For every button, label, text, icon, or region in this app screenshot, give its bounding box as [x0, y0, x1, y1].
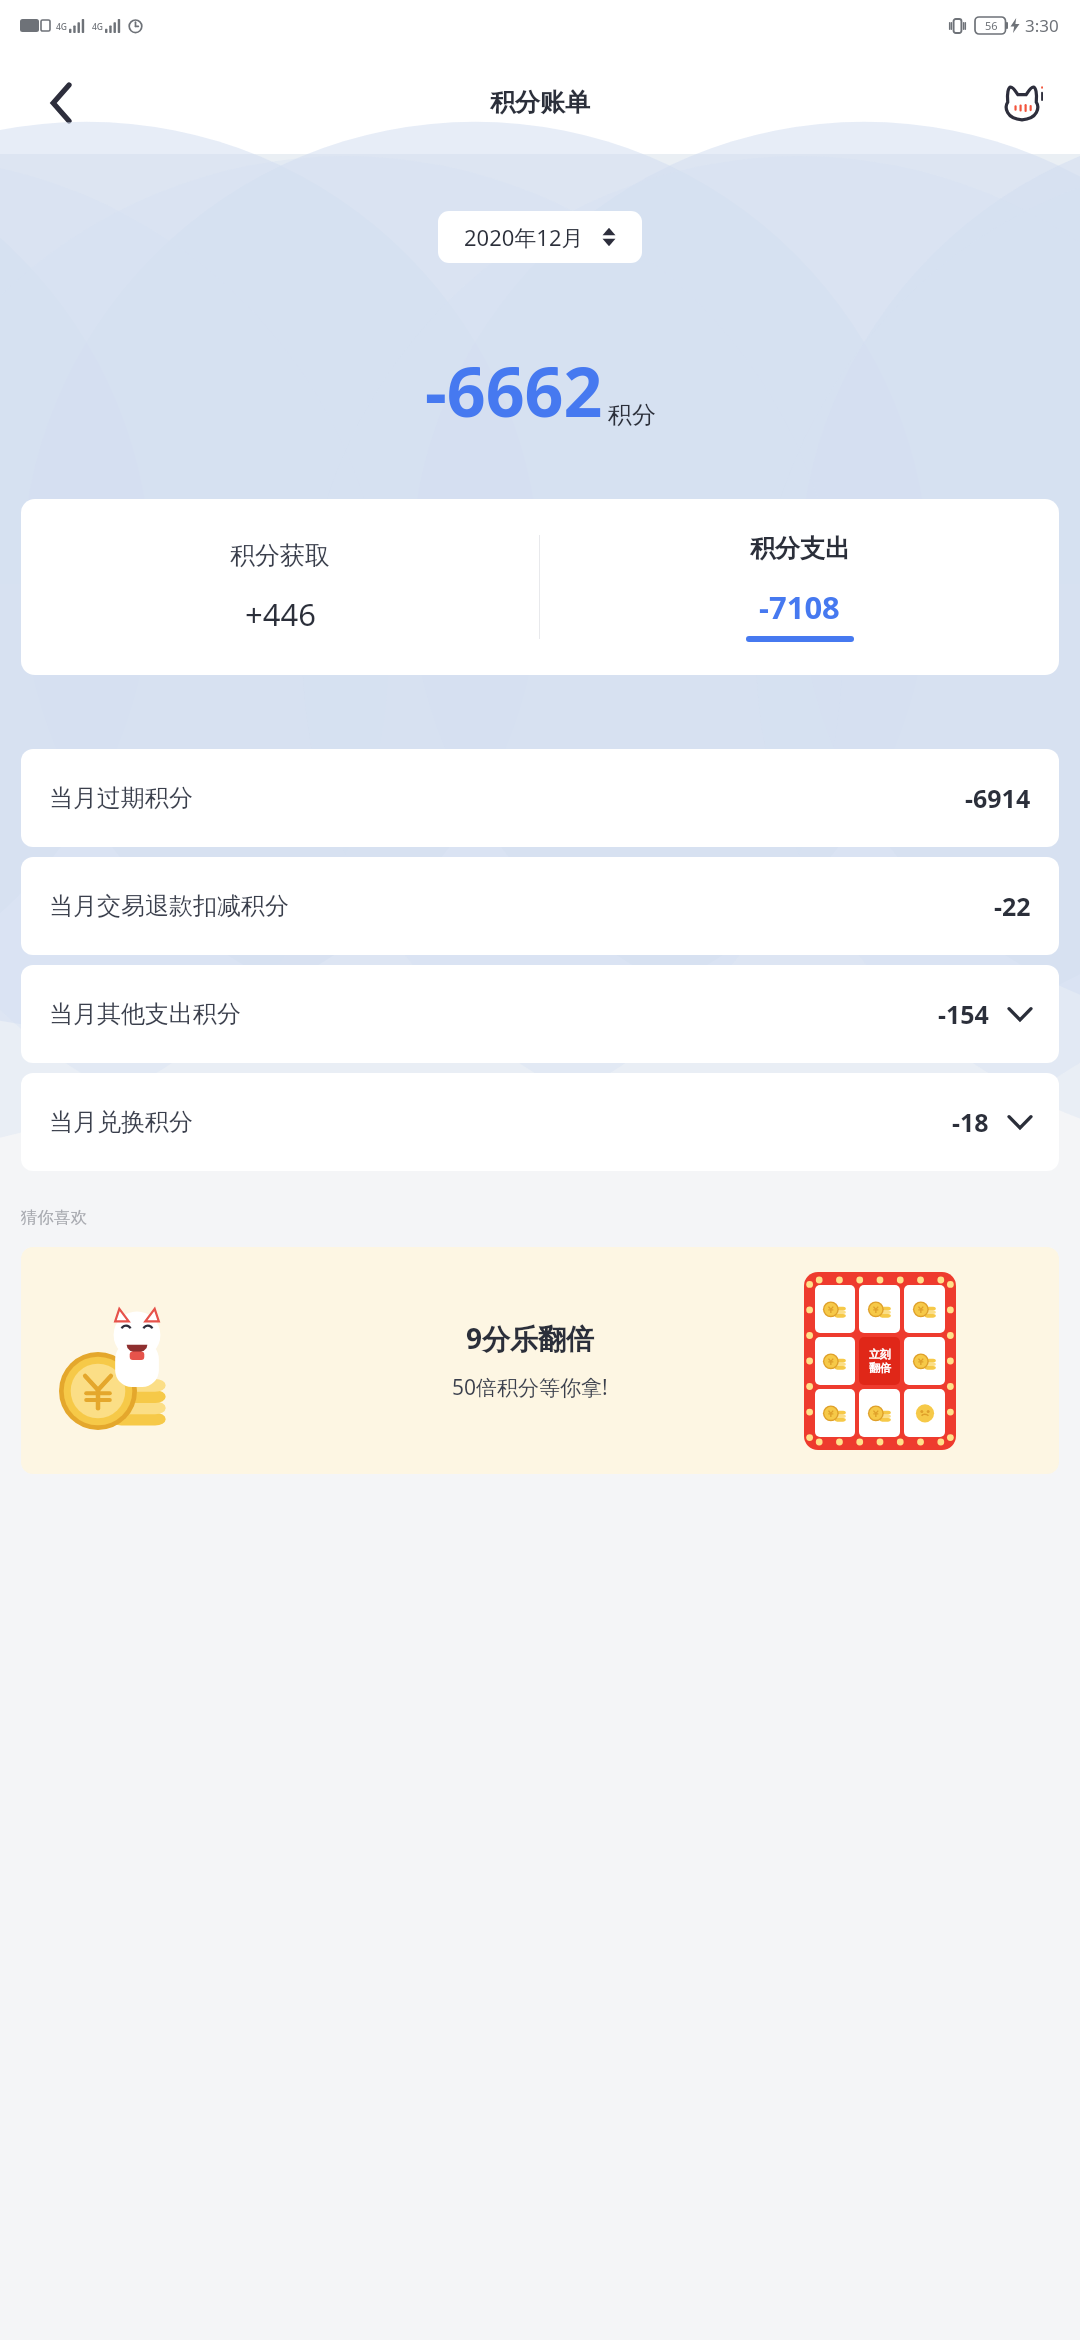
staticText: 积分账单: [490, 87, 590, 118]
button[interactable]: 返回: [38, 79, 86, 127]
staticText: -154: [938, 997, 989, 1031]
staticText: 积分: [608, 400, 656, 430]
button[interactable]: 当月其他支出积分: [21, 965, 1059, 1063]
button[interactable]: 当月交易退款扣减积分: [21, 857, 1059, 955]
button[interactable]: 9分乐翻倍: [21, 1247, 1059, 1474]
staticText: -6662: [425, 344, 603, 437]
staticText: 立刻: [869, 1347, 891, 1361]
staticText: -7108: [759, 586, 840, 628]
staticText: 9分乐翻倍: [466, 1319, 595, 1357]
staticText: 猜你喜欢: [21, 1207, 87, 1228]
staticText: 当月其他支出积分: [49, 999, 241, 1029]
staticText: -18: [952, 1105, 989, 1139]
staticText: 积分获取: [230, 540, 330, 571]
staticText: 3:30: [1025, 14, 1059, 37]
button[interactable]: 当月兑换积分: [21, 1073, 1059, 1171]
staticText: -22: [994, 889, 1031, 923]
staticText: 当月过期积分: [49, 783, 193, 813]
staticText: 4G: [56, 21, 68, 33]
staticText: +446: [245, 593, 316, 635]
staticText: 当月交易退款扣减积分: [49, 891, 289, 921]
staticText: 积分支出: [750, 533, 850, 564]
staticText: -6914: [965, 781, 1031, 815]
staticText: 当月兑换积分: [49, 1107, 193, 1137]
staticText: 50倍积分等你拿!: [452, 1373, 608, 1402]
staticText: 4G: [92, 21, 104, 33]
staticText: 2020年12月: [464, 222, 584, 252]
button[interactable]: 客服: [996, 77, 1048, 129]
button[interactable]: 2020年12月: [438, 211, 642, 263]
staticText: 翻倍: [869, 1361, 891, 1375]
button[interactable]: 积分获取: [21, 499, 539, 675]
button[interactable]: 积分支出: [540, 499, 1059, 675]
staticText: 56: [985, 18, 998, 33]
button[interactable]: 当月过期积分: [21, 749, 1059, 847]
